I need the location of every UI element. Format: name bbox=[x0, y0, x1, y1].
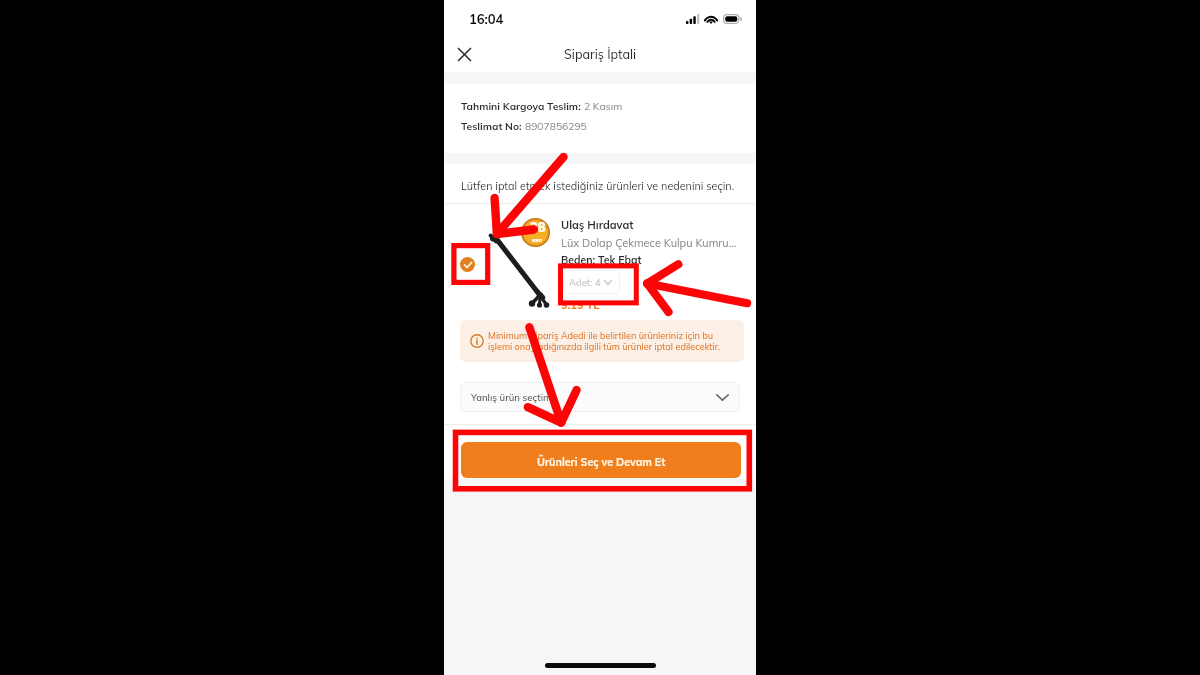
staticText: Lüx Dolap Çekmece Kulpu Kumru... bbox=[561, 236, 737, 250]
staticText: Tahmini Kargoya Teslim: bbox=[461, 100, 584, 113]
button[interactable]: Yanlış ürün seçtim bbox=[460, 382, 740, 412]
staticText: 8907856295 bbox=[525, 120, 587, 133]
staticText: mm bbox=[532, 236, 543, 243]
staticText: Teslimat No: bbox=[461, 120, 525, 133]
button[interactable]: Adet seç bbox=[563, 270, 620, 294]
button[interactable]: Ürünleri Seç ve Devam Et bbox=[461, 442, 741, 478]
staticText: Minimum Sipariş Adedi ile belirtilen ürü… bbox=[488, 330, 734, 352]
staticText: Beden: Tek Ebat bbox=[561, 253, 642, 266]
staticText: Yanlış ürün seçtim bbox=[471, 391, 552, 403]
button[interactable]: Ürünü seç bbox=[456, 253, 478, 275]
staticText: 9.19 TL bbox=[561, 298, 600, 312]
staticText: Sipariş İptali bbox=[564, 46, 637, 62]
staticText: 2 Kasım bbox=[584, 100, 623, 113]
staticText: 16:04 bbox=[469, 11, 504, 27]
staticText: 28 bbox=[530, 219, 546, 235]
staticText: Ulaş Hırdavat bbox=[561, 218, 634, 232]
staticText: Ürünleri Seç ve Devam Et bbox=[537, 455, 666, 468]
button[interactable]: Kapat bbox=[449, 39, 479, 69]
staticText: Lütfen iptal etmek istediğiniz ürünleri … bbox=[461, 179, 735, 193]
staticText: Adet: 4 bbox=[569, 276, 601, 288]
